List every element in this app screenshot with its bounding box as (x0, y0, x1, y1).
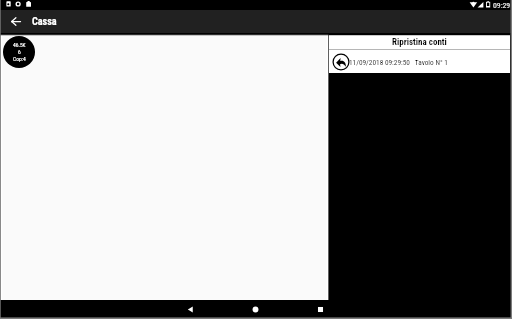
button[interactable]: Ripristina (329, 50, 510, 73)
staticText: Ripristina conti (392, 37, 447, 48)
staticText: Cop:4 (13, 56, 26, 63)
button[interactable]: Recents (311, 300, 330, 319)
staticText: 6 (18, 49, 21, 56)
button[interactable]: Home (246, 300, 265, 319)
staticText: Cassa (32, 16, 57, 28)
staticText: 11/09/2018 09:29:50 Tavolo N° 1 (349, 58, 448, 67)
staticText: 46.5€ (13, 42, 26, 49)
staticText: 09:29 (493, 1, 511, 10)
button[interactable]: 46.5€ (3, 36, 35, 68)
button[interactable]: Back (4, 10, 27, 33)
other: Ripristina (332, 53, 350, 71)
button[interactable]: Back (181, 300, 200, 319)
